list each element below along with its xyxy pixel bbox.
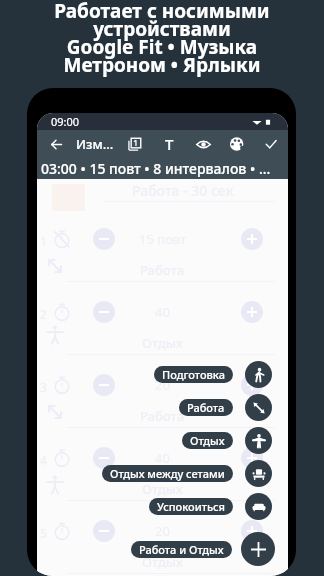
button[interactable]: Подготовка [245, 361, 272, 388]
staticText: Отдых [190, 433, 225, 448]
button[interactable]: Отдых между сетами [245, 460, 272, 487]
staticText: Отдых [142, 334, 183, 352]
button[interactable]: Работа [179, 399, 233, 416]
staticText: 15 повт [139, 230, 187, 248]
button[interactable]: Back [46, 134, 66, 154]
button[interactable]: Работа [245, 394, 272, 421]
staticText: 03:00 • 15 повт • 8 интервалов • ... [41, 159, 271, 178]
staticText: Работа [140, 261, 185, 279]
staticText: 2 [40, 306, 47, 322]
staticText: 3 [40, 379, 47, 395]
staticText: Изм... [76, 135, 114, 153]
staticText: Отдых [142, 480, 183, 498]
staticText: Отдых между сетами [110, 466, 225, 481]
staticText: Успокоиться [157, 499, 225, 514]
button[interactable]: Text [159, 134, 179, 154]
staticText: Отдых [142, 553, 183, 571]
staticText: 20 [155, 522, 170, 540]
staticText: T [165, 134, 174, 154]
button[interactable]: Успокоиться [245, 493, 272, 520]
staticText: Работа и Отдых [139, 542, 224, 557]
button[interactable]: Отдых [245, 427, 272, 454]
staticText: Работа [187, 400, 225, 415]
button[interactable]: Palette [227, 134, 247, 154]
button[interactable]: Add [241, 532, 275, 566]
staticText: Работа [140, 407, 185, 425]
staticText: 40 [155, 303, 170, 321]
button[interactable]: Отдых между сетами [102, 465, 233, 482]
staticText: 40 [155, 449, 170, 467]
button[interactable]: Подготовка [154, 366, 233, 383]
button[interactable]: Успокоиться [149, 498, 233, 515]
button[interactable]: Copy [125, 134, 145, 154]
staticText: Подготовка [162, 367, 225, 382]
button[interactable]: Done [261, 134, 281, 154]
button[interactable]: Отдых [182, 432, 233, 449]
staticText: 5 [40, 525, 47, 541]
staticText: Работает с носимыми устройствами Google … [0, 0, 324, 78]
staticText: 20 [155, 376, 170, 394]
staticText: 4 [40, 452, 47, 468]
button[interactable]: Работа и Отдых [131, 541, 232, 558]
button[interactable]: Preview [193, 134, 213, 154]
staticText: 09:00 [51, 114, 80, 129]
staticText: Работа - 30 сек [132, 181, 234, 200]
staticText: 1 [40, 233, 47, 249]
